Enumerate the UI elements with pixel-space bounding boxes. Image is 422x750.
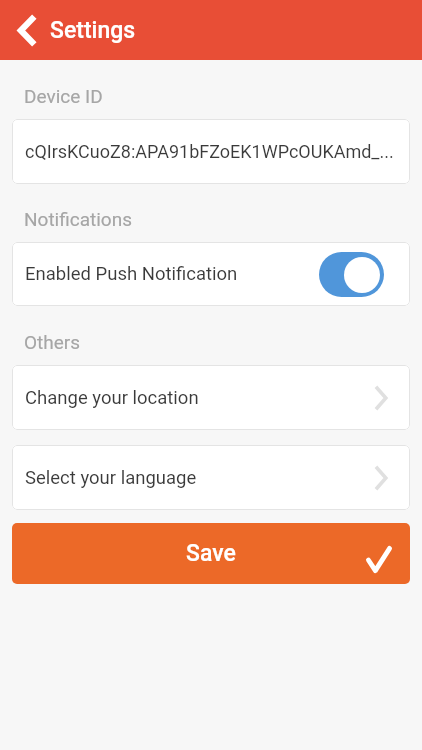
staticText: Notifications (24, 208, 133, 230)
button[interactable]: Enabled Push Notification (12, 242, 410, 306)
staticText: Save (186, 540, 236, 567)
staticText: Enabled Push Notification (25, 263, 238, 285)
staticText: Change your location (25, 387, 199, 409)
staticText: cQIrsKCuoZ8:APA91bFZoEK1WPcOUKAmd_... (25, 141, 394, 162)
button[interactable]: Change your location (12, 365, 410, 430)
button[interactable]: Back (4, 0, 48, 60)
staticText: Others (24, 331, 81, 353)
staticText: Select your language (25, 467, 197, 489)
staticText: Device ID (24, 85, 103, 107)
button[interactable]: Select your language (12, 445, 410, 510)
staticText: Settings (50, 17, 136, 44)
button[interactable]: Save (12, 523, 410, 584)
